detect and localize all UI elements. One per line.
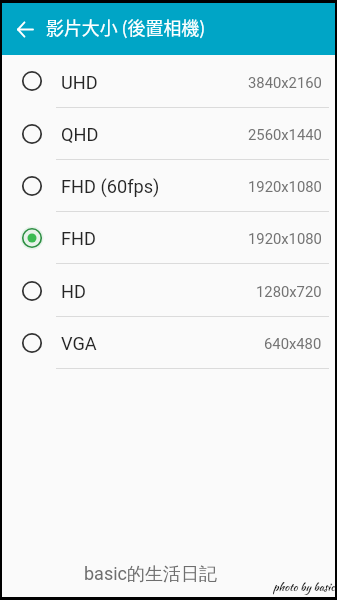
button[interactable]: FHD bbox=[2, 212, 335, 264]
staticText: 640x480 bbox=[264, 335, 322, 352]
staticText: FHD (60fps) bbox=[61, 176, 160, 197]
button[interactable]: QHD bbox=[2, 108, 335, 160]
staticText: basic的生活日記 bbox=[84, 563, 217, 586]
button[interactable]: VGA bbox=[2, 317, 335, 369]
staticText: VGA bbox=[61, 333, 97, 354]
button[interactable]: HD bbox=[2, 265, 335, 317]
button[interactable]: Back bbox=[2, 3, 46, 55]
staticText: UHD bbox=[61, 72, 98, 93]
staticText: FHD bbox=[61, 228, 96, 249]
button[interactable]: UHD bbox=[2, 55, 335, 108]
staticText: 3840x2160 bbox=[248, 74, 322, 91]
staticText: 1280x720 bbox=[256, 283, 322, 300]
staticText: QHD bbox=[61, 124, 99, 145]
staticText: 1920x1080 bbox=[248, 178, 322, 195]
staticText: photo by basic bbox=[273, 579, 335, 595]
staticText: 1920x1080 bbox=[248, 230, 322, 247]
staticText: HD bbox=[61, 281, 86, 302]
staticText: 影片大小 (後置相機) bbox=[46, 14, 206, 40]
button[interactable]: FHD (60fps) bbox=[2, 160, 335, 212]
staticText: 2560x1440 bbox=[248, 126, 322, 143]
